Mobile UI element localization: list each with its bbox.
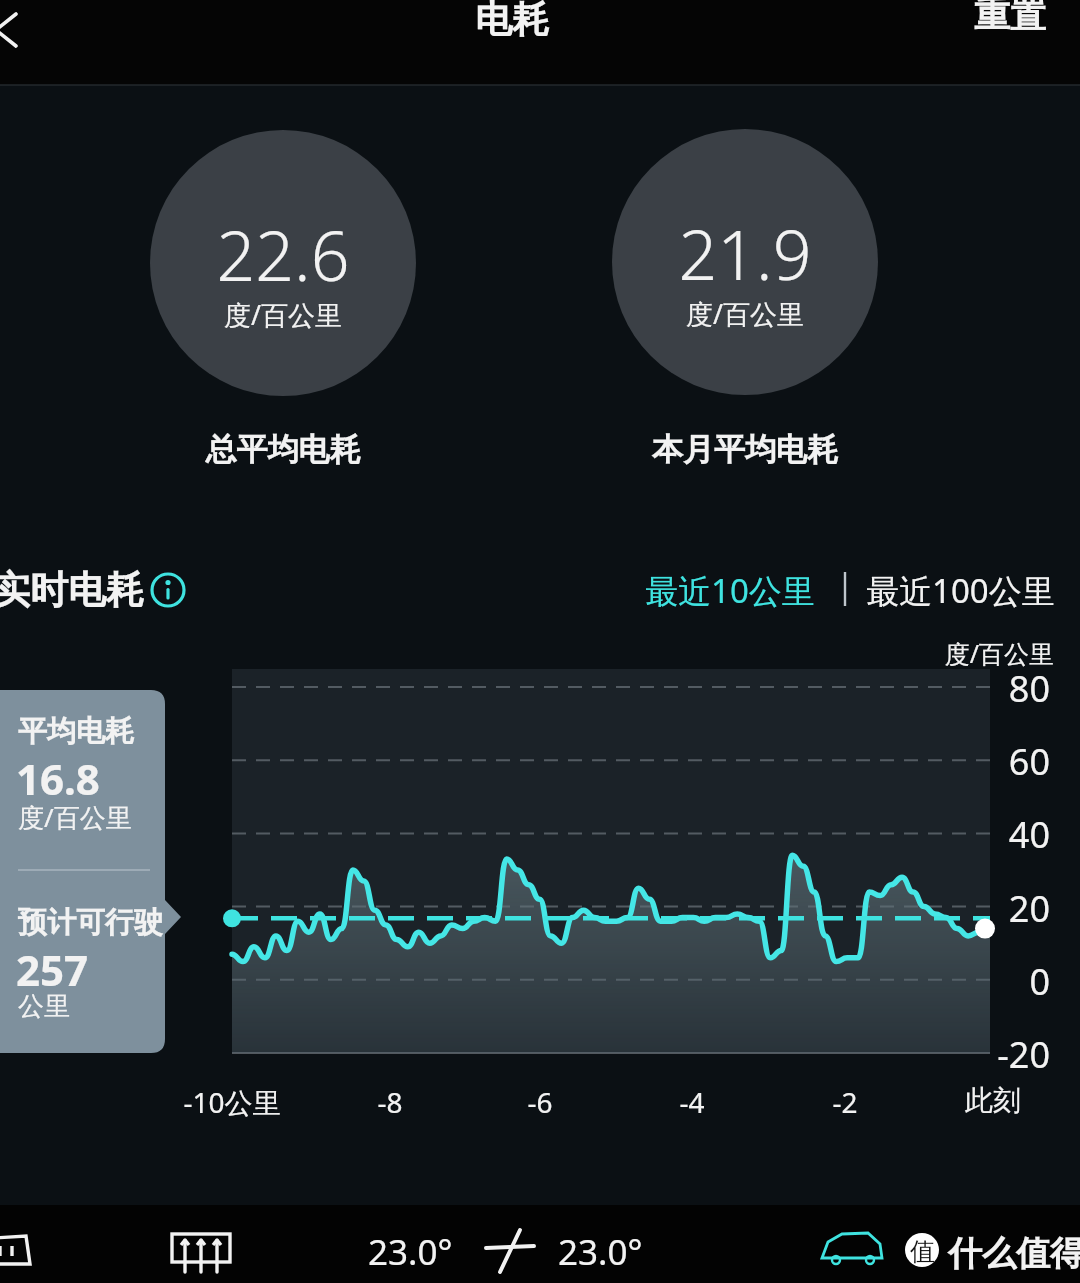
staticText: 电耗 bbox=[312, 0, 712, 43]
staticText: 实时电耗 bbox=[0, 566, 392, 614]
button[interactable]: 最近10公里 bbox=[630, 562, 830, 618]
button[interactable]: Front defrost bbox=[0, 1222, 72, 1282]
staticText: 什么值得买 bbox=[948, 1232, 1080, 1275]
staticText: -6 bbox=[340, 1083, 740, 1121]
staticText: 22.6 bbox=[83, 208, 483, 301]
staticText: 重置 bbox=[974, 0, 1046, 37]
button[interactable]: Information bbox=[146, 568, 192, 614]
button[interactable]: 重置 bbox=[935, 0, 1080, 54]
staticText: 度/百公里 bbox=[654, 636, 1054, 670]
staticText: 公里 bbox=[18, 990, 418, 1023]
staticText: 度/百公里 bbox=[545, 295, 945, 332]
staticText: 最近100公里 bbox=[866, 568, 1055, 613]
staticText: 此刻 bbox=[793, 1083, 1080, 1118]
staticText: 20 bbox=[650, 884, 1050, 933]
staticText: 21.9 bbox=[545, 207, 945, 300]
staticText: 80 bbox=[650, 664, 1050, 713]
staticText: 预计可行驶 bbox=[18, 904, 418, 941]
staticText: 本月平均电耗 bbox=[545, 430, 945, 469]
staticText: 最近10公里 bbox=[645, 568, 815, 613]
staticText: 40 bbox=[650, 810, 1050, 859]
button[interactable]: 最近100公里 bbox=[850, 562, 1070, 618]
button[interactable]: Back bbox=[0, 0, 90, 85]
staticText: 0 bbox=[650, 957, 1050, 1006]
staticText: 257 bbox=[16, 941, 416, 998]
button[interactable]: 23.0° bbox=[350, 1225, 470, 1279]
button[interactable]: Auto climate bbox=[810, 1226, 900, 1280]
staticText: -4 bbox=[492, 1083, 892, 1121]
staticText: 值 bbox=[910, 1236, 1080, 1267]
staticText: 23.0° bbox=[368, 1228, 453, 1276]
button[interactable]: 23.0° bbox=[540, 1225, 660, 1279]
staticText: 度/百公里 bbox=[18, 799, 418, 835]
button[interactable]: Rear defrost bbox=[158, 1222, 248, 1282]
staticText: 23.0° bbox=[558, 1228, 643, 1276]
staticText: -2 bbox=[645, 1083, 1045, 1121]
staticText: 总平均电耗 bbox=[83, 430, 483, 469]
staticText: 度/百公里 bbox=[83, 296, 483, 333]
staticText: 平均电耗 bbox=[18, 713, 418, 750]
staticText: -8 bbox=[190, 1083, 590, 1121]
staticText: 16.8 bbox=[16, 750, 416, 807]
staticText: -20 bbox=[650, 1030, 1050, 1079]
staticText: -10公里 bbox=[32, 1083, 432, 1121]
staticText: 60 bbox=[650, 737, 1050, 786]
